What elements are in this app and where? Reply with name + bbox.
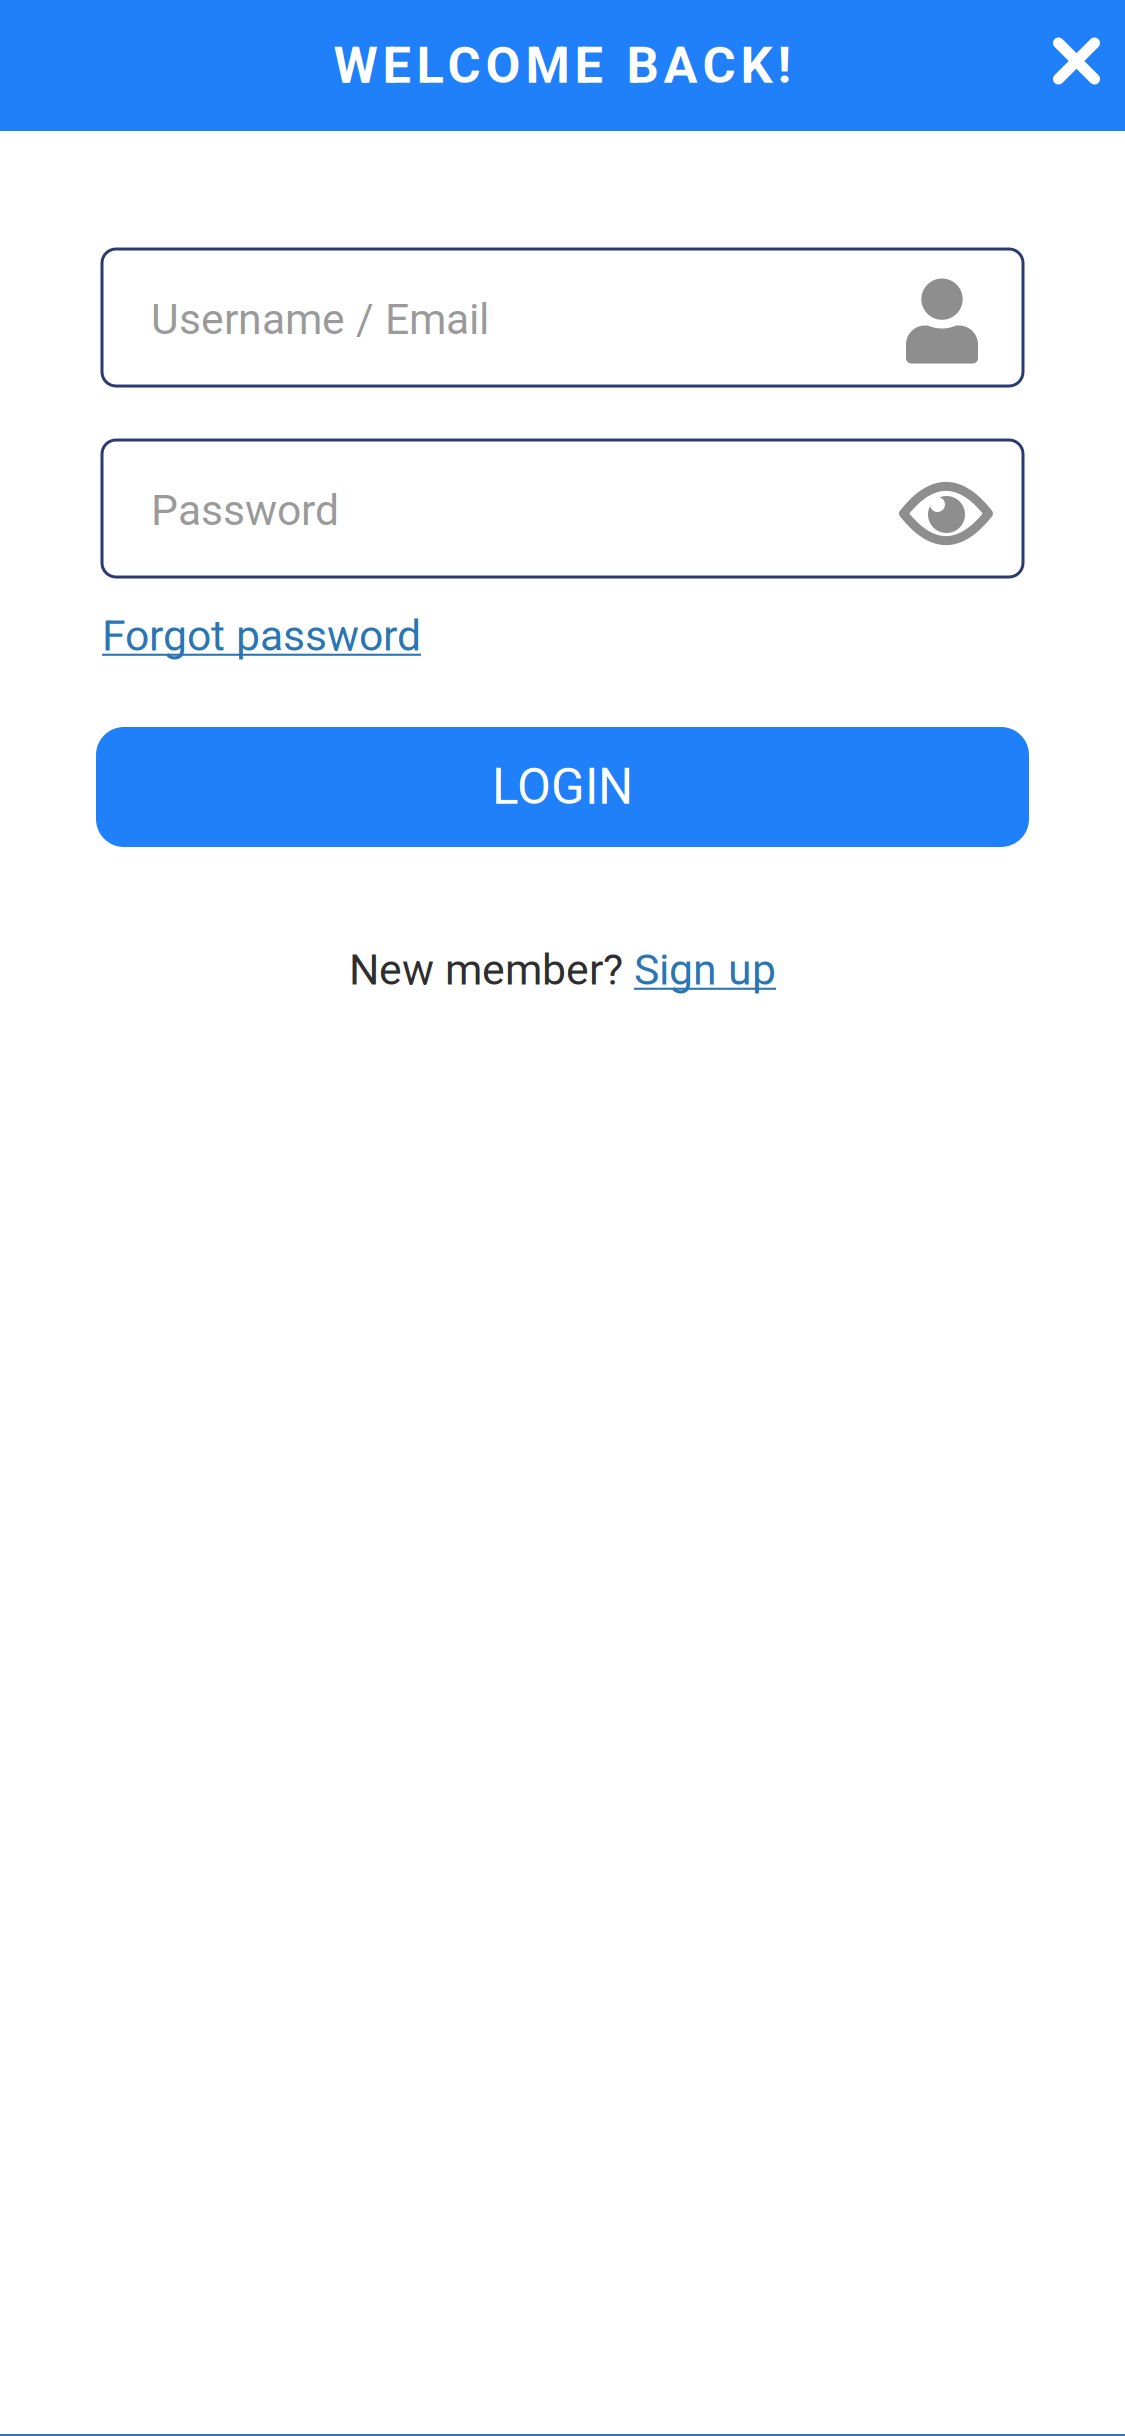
button[interactable]: Forgot password	[102, 611, 421, 661]
staticText: LOGIN	[492, 758, 633, 816]
button[interactable]: Sign up	[634, 945, 776, 995]
staticText: Password	[151, 485, 339, 535]
staticText: New member?	[349, 945, 634, 995]
staticText: Username / Email	[151, 294, 489, 344]
staticText: WELCOME BACK!	[333, 36, 791, 95]
staticText: Forgot password	[102, 611, 421, 661]
staticText: Sign up	[634, 945, 776, 995]
button[interactable]: LOGIN	[96, 727, 1029, 847]
button[interactable]: Close	[1053, 37, 1125, 93]
